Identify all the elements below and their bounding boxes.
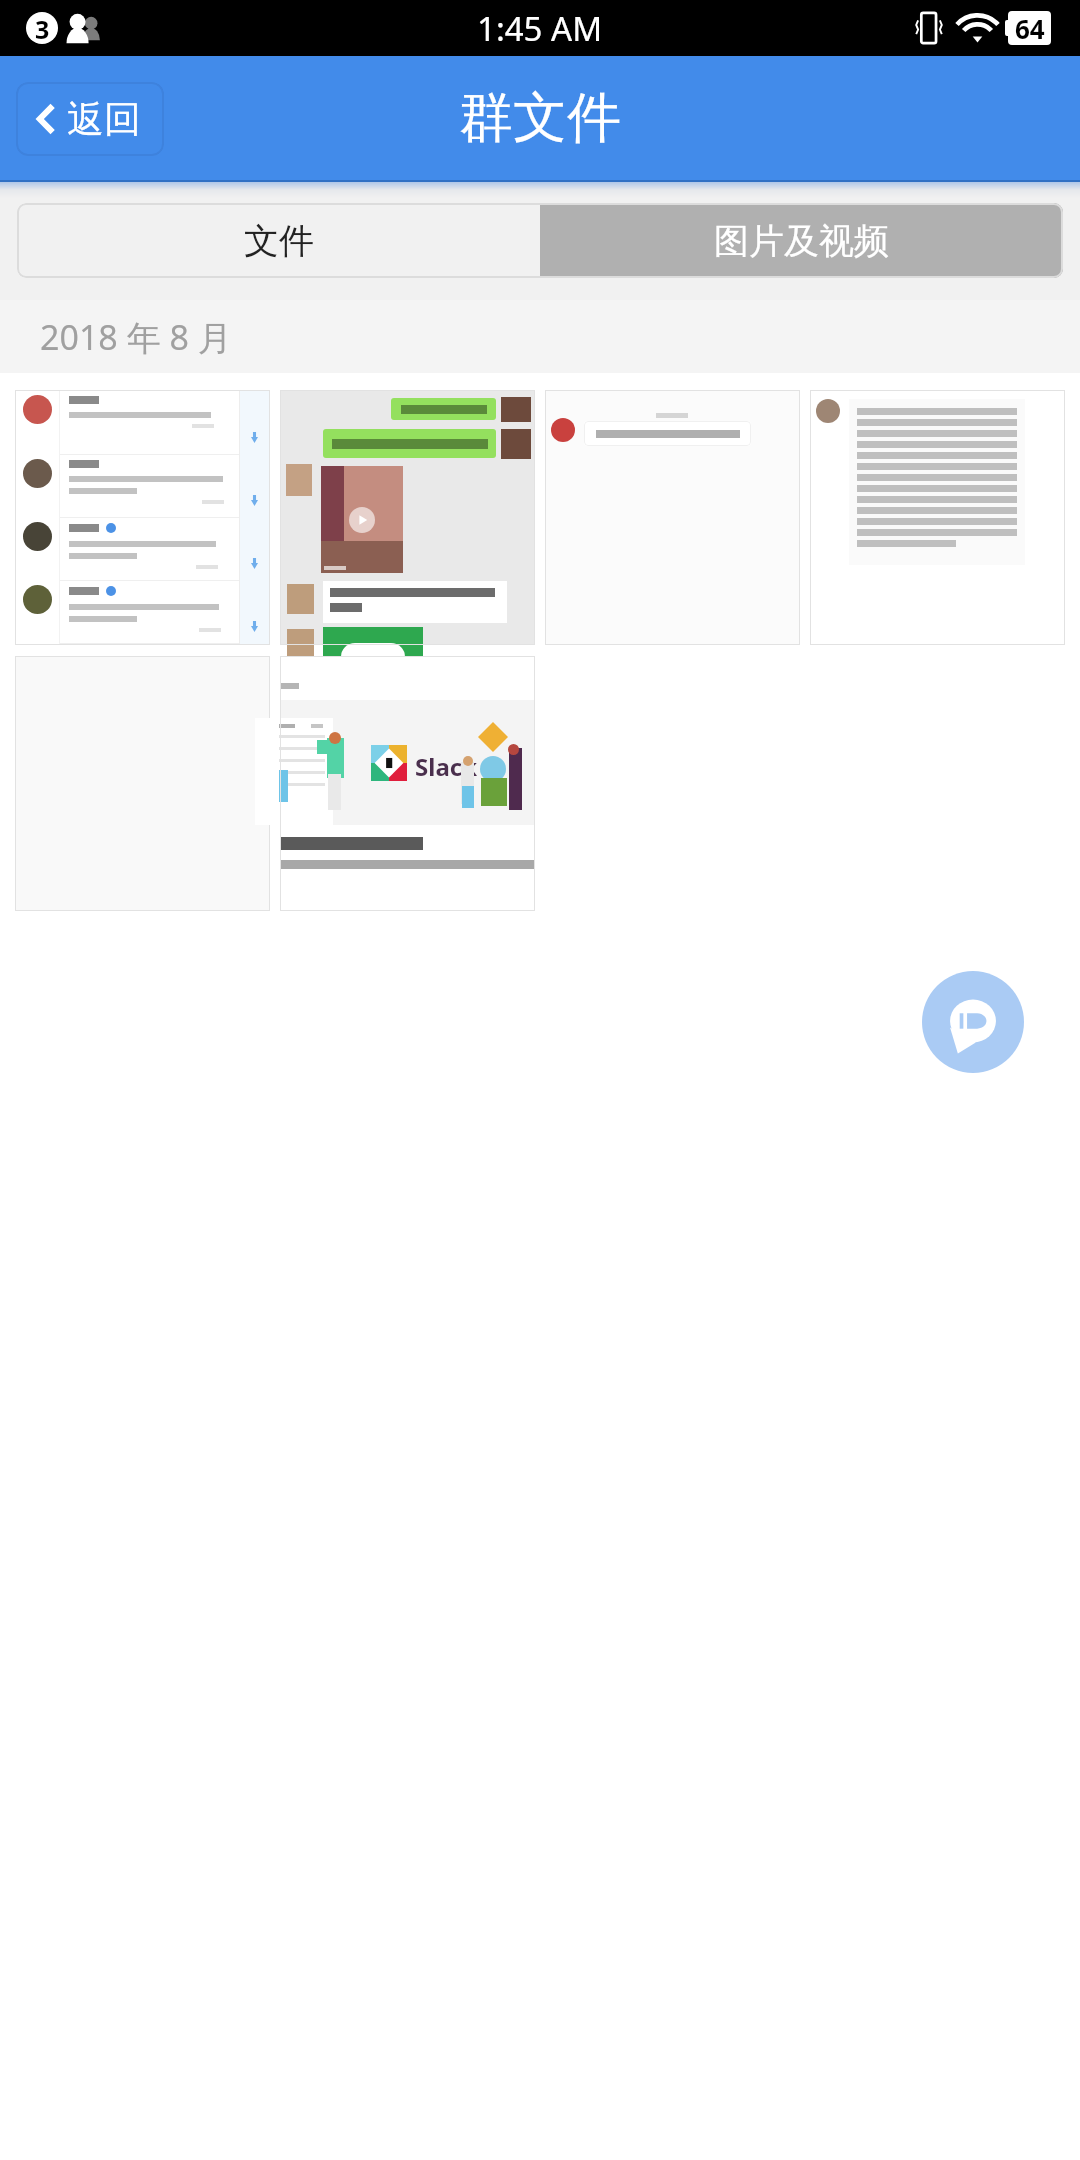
staticText: 群文件 <box>459 84 621 152</box>
staticText: 图片及视频 <box>714 219 889 263</box>
button[interactable]: Slack <box>281 657 534 910</box>
button[interactable]: 图片及视频 <box>540 203 1063 278</box>
button[interactable] <box>16 391 269 644</box>
staticText: Slack <box>415 750 478 783</box>
staticText: 3 <box>35 12 50 44</box>
staticText: 返回 <box>67 96 141 143</box>
button[interactable]: 文件 <box>17 203 540 278</box>
staticText: 文件 <box>244 219 314 263</box>
button[interactable] <box>811 391 1064 644</box>
staticText: 2018 年 8 月 <box>40 314 232 360</box>
staticText: 64 <box>1015 11 1045 45</box>
button[interactable] <box>281 391 534 644</box>
button[interactable]: Send message <box>922 971 1024 1073</box>
button[interactable]: 返回 <box>16 82 164 156</box>
button[interactable] <box>546 391 799 644</box>
staticText: 1:45 AM <box>477 6 603 51</box>
